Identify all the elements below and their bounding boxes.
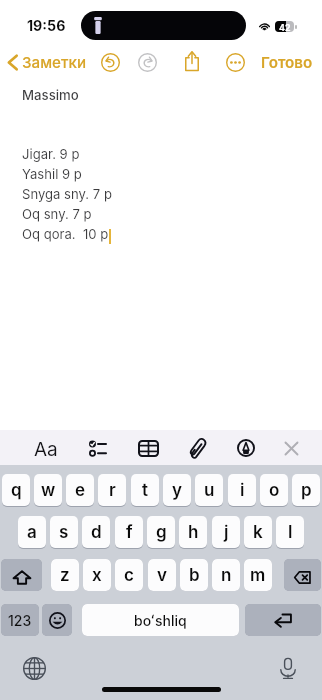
staticText: u <box>204 480 215 501</box>
button[interactable]: d <box>82 516 110 548</box>
button[interactable]: More <box>226 53 245 72</box>
staticText: Заметки <box>22 53 87 71</box>
button[interactable]: Table <box>134 434 162 462</box>
staticText: o <box>269 480 280 501</box>
button[interactable]: e <box>66 474 94 506</box>
button[interactable]: q <box>2 474 30 506</box>
button[interactable]: Готово <box>257 50 317 74</box>
staticText: Snyga sny. 7 p <box>22 186 112 206</box>
button[interactable]: n <box>212 559 240 591</box>
staticText: p <box>301 480 312 501</box>
button[interactable]: Return <box>245 604 321 636</box>
staticText: n <box>221 565 232 586</box>
staticText: Jigar. 9 p <box>22 146 80 166</box>
button[interactable]: g <box>147 516 175 548</box>
button[interactable]: Close keyboard <box>277 434 305 462</box>
staticText: c <box>124 565 134 586</box>
button[interactable]: Aa <box>32 434 60 462</box>
button[interactable]: Backspace <box>284 559 321 591</box>
button[interactable]: r <box>98 474 126 506</box>
button[interactable]: w <box>34 474 62 506</box>
staticText: x <box>92 565 102 586</box>
staticText: z <box>60 565 70 586</box>
button[interactable]: m <box>244 559 272 591</box>
staticText: m <box>250 565 266 586</box>
button[interactable]: Attach <box>184 434 212 462</box>
staticText: f <box>126 522 133 543</box>
staticText: Готово <box>261 53 313 71</box>
button[interactable]: v <box>148 559 176 591</box>
staticText: e <box>75 480 86 501</box>
staticText: 42 <box>279 22 291 33</box>
staticText: s <box>59 522 69 543</box>
button[interactable]: p <box>292 474 320 506</box>
staticText: boʻshliq <box>134 612 187 629</box>
staticText: 19:56 <box>27 17 66 34</box>
staticText: q <box>11 480 22 501</box>
staticText: a <box>27 522 37 543</box>
staticText: j <box>224 522 229 543</box>
button[interactable]: boʻshliq <box>82 604 239 636</box>
button[interactable]: Change keyboard <box>22 656 46 680</box>
staticText: 123 <box>8 612 32 629</box>
staticText: g <box>156 522 167 543</box>
staticText: Yashil 9 p <box>22 166 82 186</box>
button[interactable]: 123 <box>1 604 39 636</box>
staticText: d <box>91 522 102 543</box>
button[interactable]: i <box>228 474 256 506</box>
button[interactable]: Markup <box>232 434 260 462</box>
staticText: r <box>109 480 116 501</box>
staticText: Aa <box>34 438 58 461</box>
staticText: b <box>189 565 200 586</box>
staticText: v <box>157 565 167 586</box>
button[interactable]: Checklist <box>83 434 111 462</box>
button[interactable]: o <box>260 474 288 506</box>
button[interactable]: Undo <box>101 53 120 72</box>
staticText: k <box>253 522 263 543</box>
staticText: i <box>240 480 245 501</box>
button[interactable]: Emoji <box>42 604 72 636</box>
staticText: h <box>188 522 199 543</box>
button[interactable]: l <box>276 516 304 548</box>
button[interactable]: t <box>131 474 159 506</box>
button[interactable]: z <box>51 559 79 591</box>
button[interactable]: s <box>50 516 78 548</box>
staticText: Oq sny. 7 p <box>22 206 92 226</box>
button[interactable]: Заметки <box>6 50 87 74</box>
staticText: t <box>142 480 149 501</box>
staticText: w <box>41 480 56 501</box>
staticText: Oq qora. 10 p <box>22 226 109 246</box>
button[interactable]: f <box>115 516 143 548</box>
button[interactable]: b <box>180 559 208 591</box>
staticText: y <box>172 480 183 501</box>
button[interactable]: u <box>195 474 223 506</box>
button[interactable]: Shift <box>1 559 42 591</box>
button[interactable]: Redo <box>138 53 157 72</box>
button[interactable]: Dictate <box>276 656 300 680</box>
button[interactable]: h <box>179 516 207 548</box>
button[interactable]: c <box>115 559 143 591</box>
button[interactable]: a <box>18 516 46 548</box>
button[interactable]: y <box>163 474 191 506</box>
button[interactable]: x <box>83 559 111 591</box>
button[interactable]: k <box>244 516 272 548</box>
staticText: l <box>288 522 293 543</box>
button[interactable]: Share <box>182 48 202 74</box>
button[interactable]: j <box>212 516 240 548</box>
staticText: Massimo <box>22 87 79 103</box>
